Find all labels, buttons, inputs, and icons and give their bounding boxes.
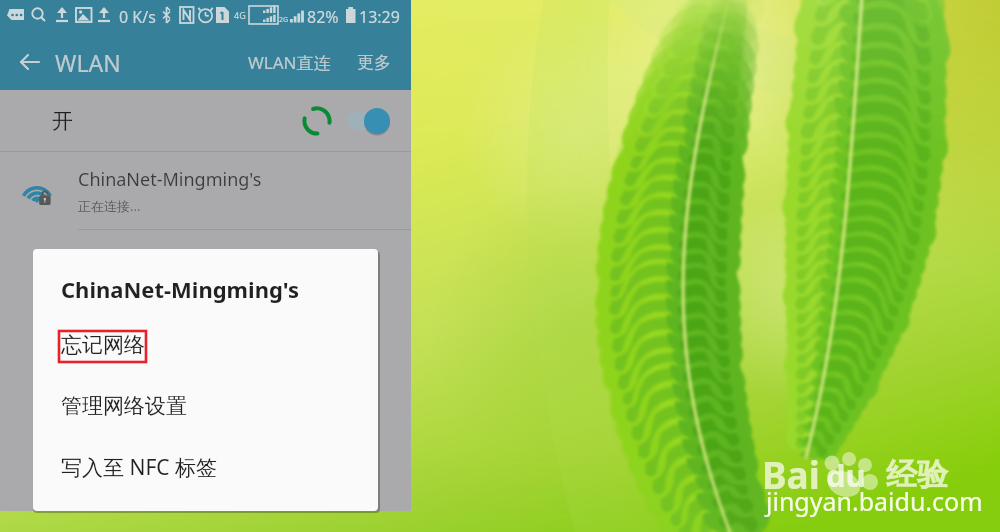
button[interactable]: ChinaNet-Mingming's	[0, 152, 411, 230]
staticText: 更多	[357, 52, 391, 73]
staticText: du	[826, 454, 866, 494]
staticText: ChinaNet-Mingming's	[61, 274, 300, 304]
staticText: 忘记网络	[61, 332, 145, 358]
staticText: WLAN	[55, 47, 121, 78]
staticText: 管理网络设置	[61, 393, 187, 419]
button[interactable]: 忘记网络	[33, 321, 378, 369]
button[interactable]: Back	[14, 46, 46, 78]
button[interactable]: 开	[0, 90, 411, 151]
staticText: 13:29	[359, 6, 400, 28]
button[interactable]: 更多	[351, 46, 397, 79]
button[interactable]: 管理网络设置	[33, 382, 378, 430]
staticText: 正在连接...	[78, 197, 141, 215]
staticText: Bai	[762, 449, 820, 499]
staticText: 开	[52, 108, 73, 134]
staticText: 82%	[307, 6, 339, 28]
staticText: 经验	[886, 455, 948, 494]
staticText: ChinaNet-Mingming's	[78, 167, 262, 192]
staticText: WLAN直连	[248, 51, 331, 74]
staticText: 4G	[234, 9, 246, 21]
staticText: 写入至 NFC 标签	[61, 453, 218, 482]
staticText: 2G	[279, 15, 289, 25]
button[interactable]: 写入至 NFC 标签	[33, 443, 378, 491]
button[interactable]: WLAN直连	[242, 45, 337, 80]
staticText: jingyan.baidu.com	[766, 484, 983, 518]
staticText: 0 K/s	[119, 6, 156, 28]
